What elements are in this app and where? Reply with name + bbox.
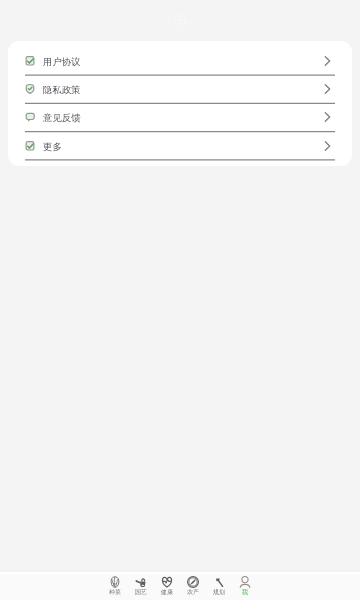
button[interactable]: 农产 xyxy=(180,574,206,596)
button[interactable]: 种菜 xyxy=(102,574,128,596)
staticText: 园艺 xyxy=(135,588,147,596)
button[interactable]: 我 xyxy=(232,574,258,596)
staticText: 隐私政策 xyxy=(43,84,81,96)
button[interactable]: 隐私政策 xyxy=(8,75,352,103)
button[interactable]: 规划 xyxy=(206,574,232,596)
button[interactable]: 健康 xyxy=(154,574,180,596)
button[interactable]: 更多 xyxy=(8,132,352,160)
button[interactable]: 意见反馈 xyxy=(8,103,352,131)
staticText: 种菜 xyxy=(109,588,121,596)
staticText: 健康 xyxy=(161,588,173,596)
staticText: 农产 xyxy=(187,588,199,596)
staticText: 规划 xyxy=(213,588,225,596)
staticText: 意见反馈 xyxy=(43,112,81,124)
staticText: 用户协议 xyxy=(43,56,81,68)
staticText: 更多 xyxy=(43,141,62,153)
button[interactable]: 园艺 xyxy=(128,574,154,596)
button[interactable]: 用户协议 xyxy=(8,47,352,75)
staticText: 我 xyxy=(242,588,248,596)
